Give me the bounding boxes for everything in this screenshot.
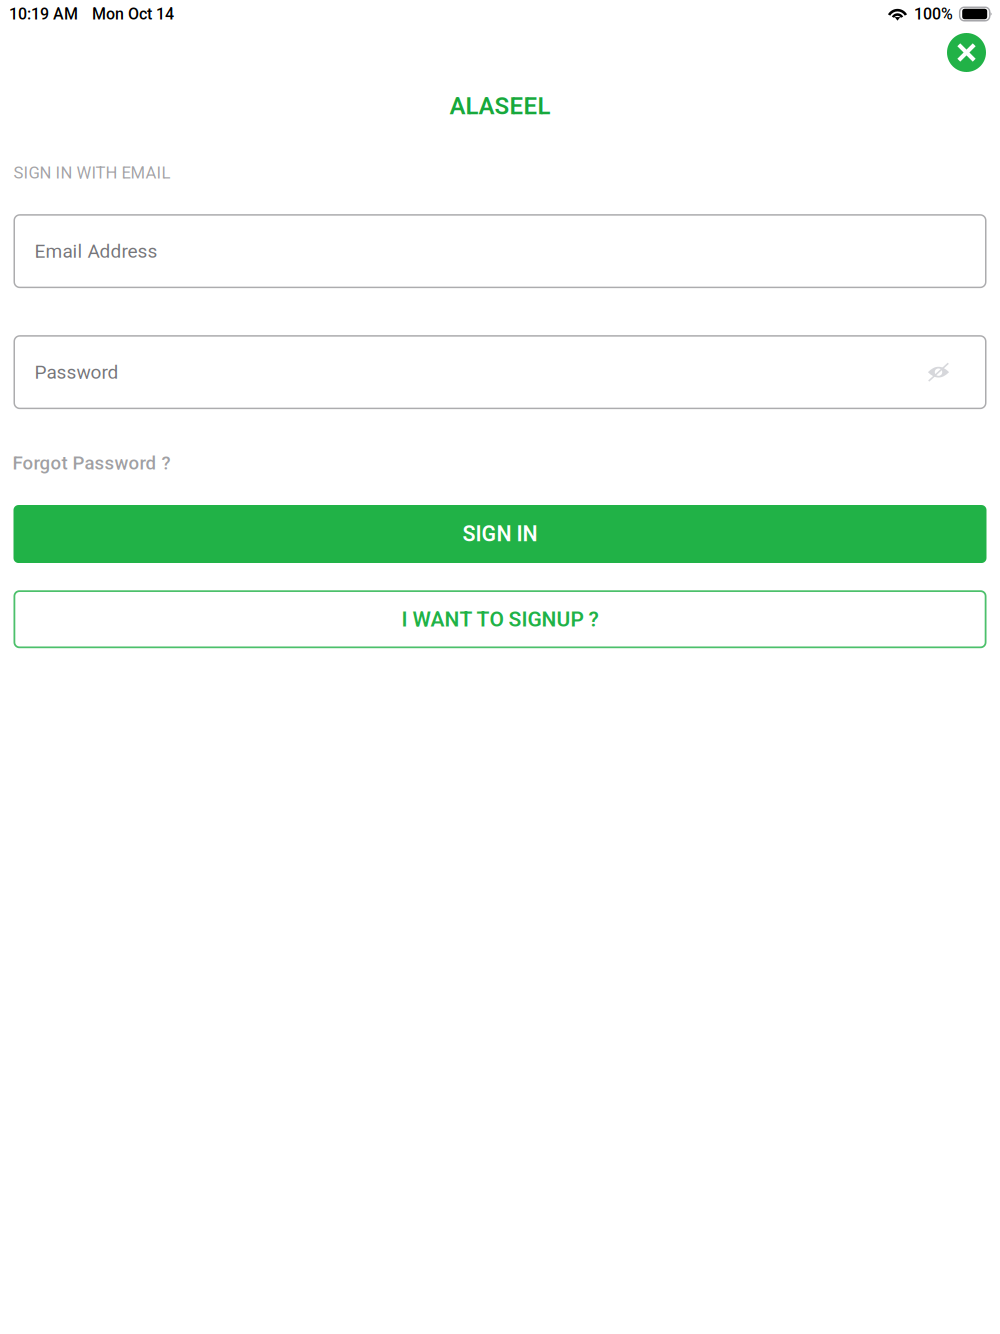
staticText: 10:19 AM [9,5,78,23]
button[interactable]: Email Address [13,214,986,288]
staticText: Email Address [34,240,157,262]
staticText: ALASEEL [449,92,550,120]
staticText: SIGN IN WITH EMAIL [13,163,170,183]
button[interactable]: Forgot Password ? [12,452,170,474]
staticText: Forgot Password ? [12,452,170,474]
button[interactable]: Password [13,335,986,409]
staticText: SIGN IN [462,521,537,546]
staticText: Mon Oct 14 [92,5,174,23]
button[interactable]: SIGN IN [13,505,986,563]
button[interactable]: Close [947,33,986,72]
button[interactable]: I WANT TO SIGNUP ? [13,590,986,648]
staticText: Password [34,361,118,383]
staticText: 100% [914,5,953,23]
staticText: I WANT TO SIGNUP ? [401,607,598,631]
